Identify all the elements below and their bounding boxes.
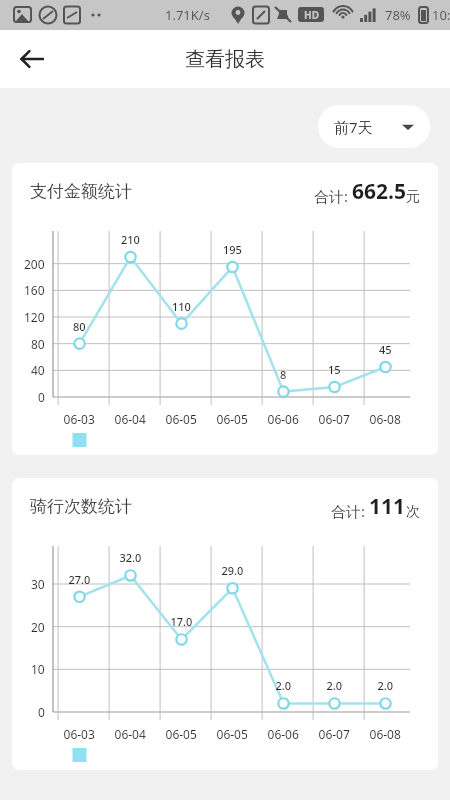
staticText: 78% bbox=[385, 6, 411, 24]
staticText: 前7天 bbox=[334, 117, 373, 137]
staticText: 合计: bbox=[331, 501, 369, 521]
staticText: 支付金额统计 bbox=[30, 181, 132, 202]
staticText: 662.5 bbox=[352, 177, 406, 206]
button[interactable]: 前7天 bbox=[318, 105, 430, 148]
staticText: HD bbox=[304, 8, 319, 22]
button[interactable]: 返回 bbox=[8, 35, 56, 83]
staticText: 元 bbox=[406, 188, 420, 206]
staticText: 合计: bbox=[314, 186, 352, 206]
staticText: 1.71K/s bbox=[165, 6, 210, 24]
staticText: 查看报表 bbox=[185, 47, 265, 72]
staticText: 10:15 bbox=[432, 6, 450, 24]
button[interactable]: 支付金额统计 bbox=[12, 163, 438, 455]
staticText: 111 bbox=[369, 492, 406, 521]
staticText: 骑行次数统计 bbox=[30, 496, 132, 517]
button[interactable]: 骑行次数统计 bbox=[12, 478, 438, 770]
staticText: 次 bbox=[406, 503, 420, 521]
